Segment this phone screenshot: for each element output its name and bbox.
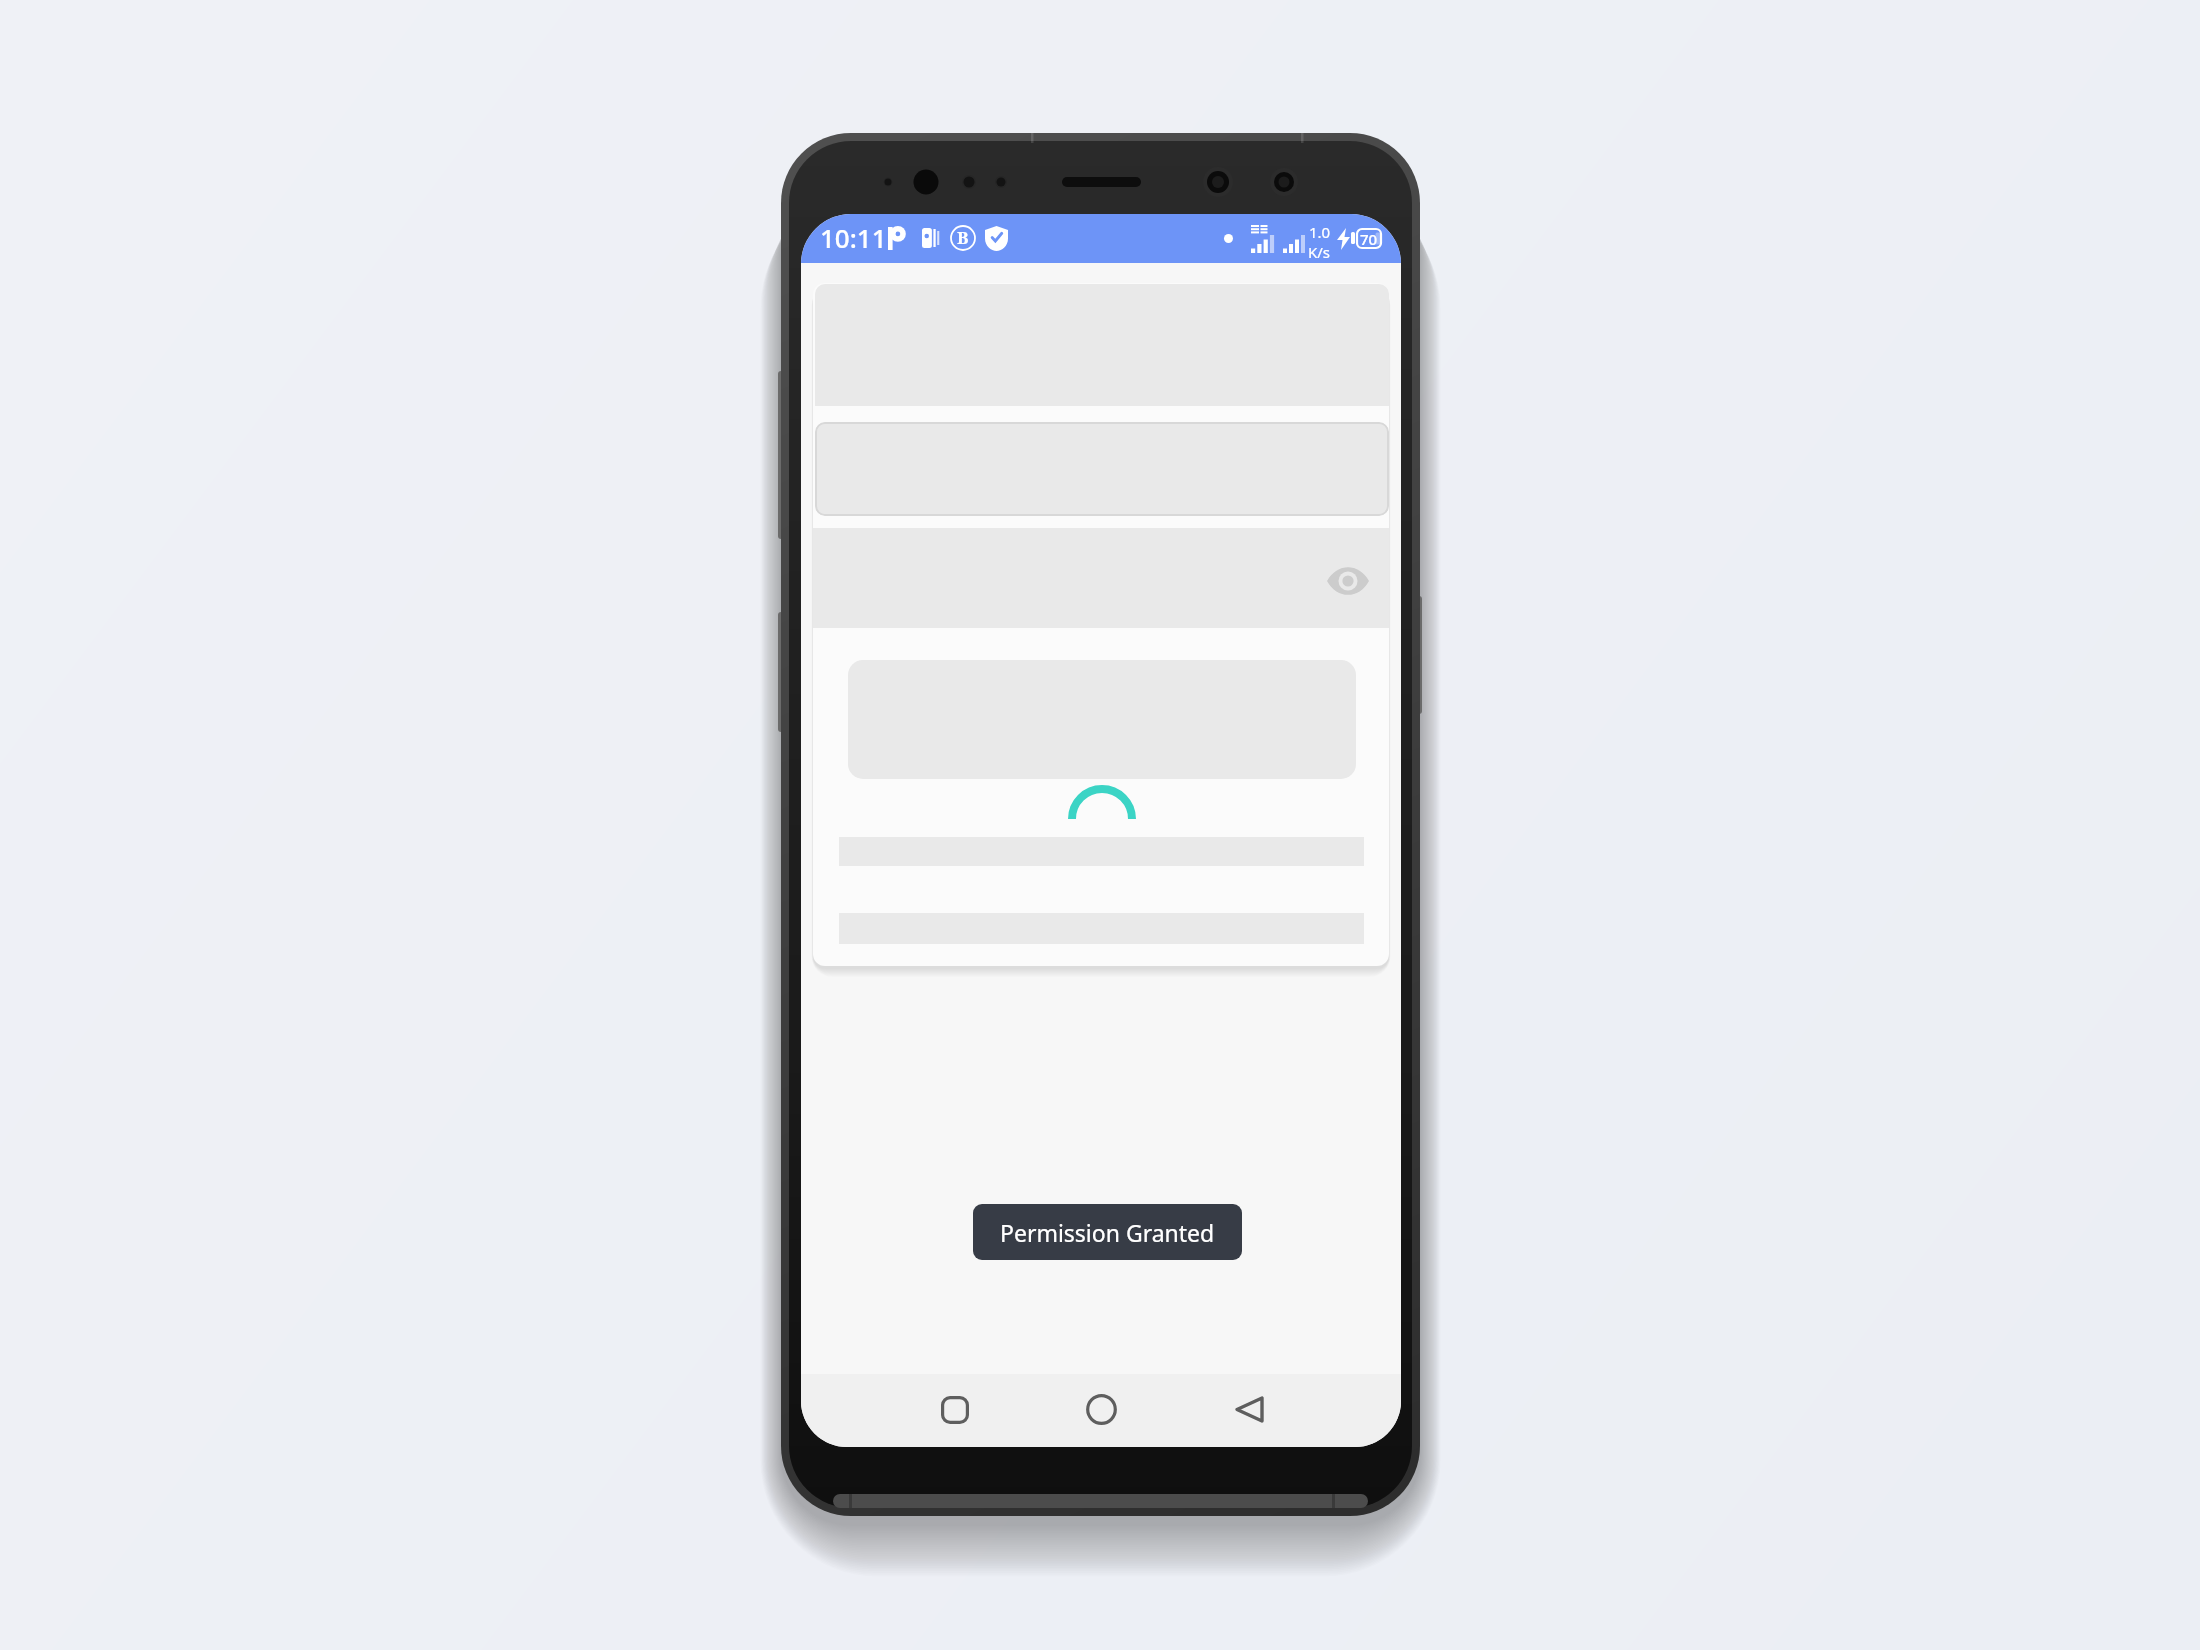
button[interactable]: Home (1063, 1373, 1139, 1446)
button[interactable]: Permission Granted (973, 1204, 1242, 1260)
button[interactable]: Show password (1322, 561, 1374, 601)
staticText: 1.0 (1309, 222, 1331, 242)
staticText: B (957, 226, 969, 249)
staticText: K/s (1308, 242, 1331, 262)
staticText: 10:11 (820, 220, 887, 255)
button[interactable]: Recents (917, 1373, 993, 1446)
button[interactable]: Back (1211, 1373, 1287, 1446)
staticText: 70 (1360, 229, 1378, 248)
staticText: Permission Granted (1000, 1217, 1215, 1248)
